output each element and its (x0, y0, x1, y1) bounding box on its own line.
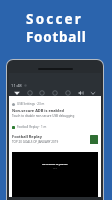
staticText: TOP 20 GOALS OF JANUARY (42, 163, 68, 165)
button[interactable]: Expand (88, 90, 98, 96)
staticText: Football (26, 28, 87, 46)
button[interactable]: Football Replay · 1 m (9, 120, 101, 151)
staticText: Non-secure ADB is enabled (12, 108, 65, 113)
staticText: 11:48 (11, 83, 22, 88)
button[interactable]: Do not disturb (37, 90, 47, 96)
button[interactable]: Flashlight (63, 90, 73, 96)
staticText: TOP 20 GOALS OF JANUARY 2019 (12, 140, 59, 144)
staticText: USB Settings · 23 m (17, 102, 45, 106)
staticText: Football Replay (12, 134, 42, 139)
button[interactable]: Battery saver (50, 90, 60, 96)
button[interactable]: Wi-Fi (12, 90, 22, 96)
button[interactable]: Volume (76, 90, 86, 96)
staticText: Football Replay · 1 m (17, 125, 47, 129)
staticText: Soccer (26, 10, 84, 28)
staticText: 2019 (53, 167, 58, 169)
button[interactable]: Bluetooth (25, 90, 35, 96)
staticText: Touch to disable non-secure USB debuggin… (12, 114, 75, 118)
button[interactable]: USB Settings · 23 m (9, 96, 101, 120)
